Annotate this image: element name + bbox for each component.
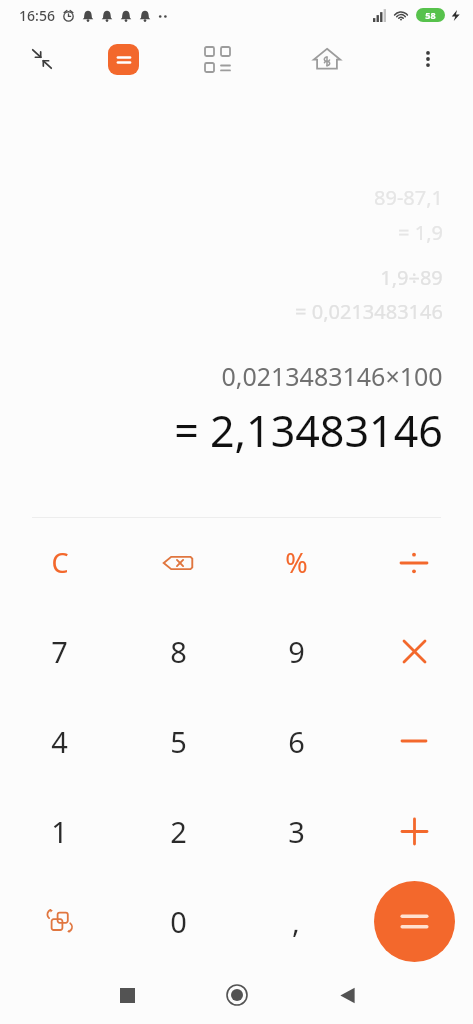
staticText: % [285,544,308,581]
button[interactable]: 7 [0,607,119,696]
staticText: = 1,9 [398,219,443,246]
button[interactable]: Multiply [355,607,473,696]
button[interactable]: 0 [119,876,237,966]
button[interactable]: Home [182,966,292,1024]
button[interactable]: Calculator [84,30,162,88]
button[interactable]: 4 [0,696,119,786]
staticText: 1 [51,812,68,851]
staticText: 7 [51,632,68,671]
staticText: 0,0213483146×100 [221,359,443,393]
button[interactable]: Back [292,966,402,1024]
staticText: 9 [288,632,305,671]
button[interactable]: Collapse [0,30,84,88]
staticText: 5 [170,722,187,761]
button[interactable]: 3 [237,786,355,876]
staticText: 8 [170,632,187,671]
button[interactable]: C [0,518,119,607]
button[interactable]: 5 [119,696,237,786]
staticText: 89-87,1 [374,184,443,211]
button[interactable]: Divide [355,518,473,607]
staticText: 3 [288,812,305,851]
staticText: 1,9÷89 [380,264,443,291]
button[interactable]: 6 [237,696,355,786]
button[interactable]: 2 [119,786,237,876]
button[interactable]: Mortgage calculator [272,30,382,88]
button[interactable]: Recents [72,966,182,1024]
staticText: = 2,13483146 [174,401,443,460]
button[interactable]: , [237,876,355,966]
button[interactable]: Plus [355,786,473,876]
staticText: = 0,0213483146 [295,298,443,325]
button[interactable]: More options [382,30,473,88]
staticText: C [51,544,69,581]
button[interactable]: Unit convert [0,876,119,966]
button[interactable]: Minus [355,696,473,786]
staticText: 0 [170,902,187,941]
button[interactable]: 8 [119,607,237,696]
staticText: , [292,902,300,941]
button[interactable]: % [237,518,355,607]
staticText: 16:56 [19,6,55,25]
staticText: 58 [425,9,436,21]
staticText: 2 [170,812,187,851]
button[interactable]: Equals [374,881,455,962]
button[interactable]: 1 [0,786,119,876]
staticText: 4 [51,722,68,761]
button[interactable]: 9 [237,607,355,696]
button[interactable]: Converters [162,30,272,88]
staticText: 6 [288,722,305,761]
button[interactable]: Backspace [119,518,237,607]
